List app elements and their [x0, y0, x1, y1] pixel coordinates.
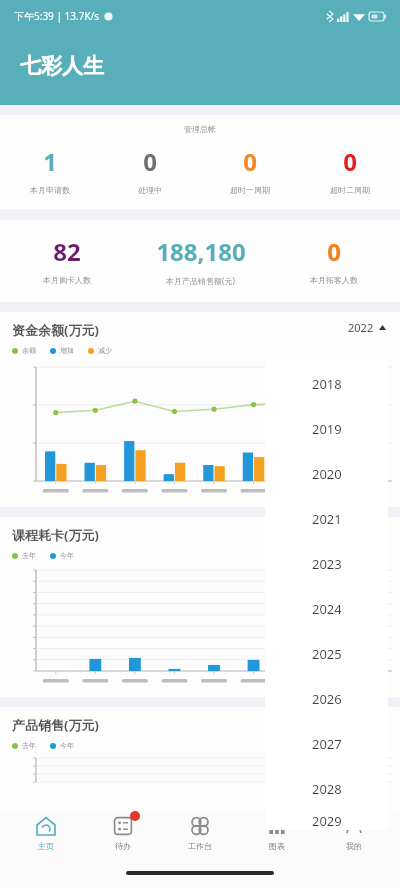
staticText: 下午5:39 | 13.7K/s	[14, 9, 100, 23]
staticText: 2018	[312, 375, 342, 393]
staticText: 2024	[312, 600, 342, 618]
staticText: 188,180	[156, 235, 246, 268]
button[interactable]: 0	[100, 145, 200, 195]
staticText: 0	[327, 235, 341, 268]
button[interactable]: 2026	[265, 676, 388, 721]
button[interactable]: 2029	[265, 811, 388, 830]
staticText: 课程耗卡(万元)	[12, 526, 99, 544]
staticText: 待办	[115, 841, 131, 851]
button[interactable]: 1	[0, 145, 100, 195]
button[interactable]: 2023	[265, 541, 388, 586]
staticText: 2025	[312, 645, 342, 663]
staticText: 去年	[22, 551, 36, 560]
button[interactable]: 2020	[265, 451, 388, 496]
staticText: 本月购卡人数	[43, 275, 91, 285]
staticText: 1	[43, 145, 57, 178]
button[interactable]: 主页	[15, 814, 77, 851]
button[interactable]: 2028	[265, 766, 388, 811]
staticText: 产品销售(万元)	[12, 716, 99, 734]
button[interactable]: 0	[200, 145, 300, 195]
staticText: 图表	[269, 841, 285, 851]
button[interactable]: 2025	[265, 631, 388, 676]
button[interactable]: 0	[267, 235, 400, 285]
staticText: 今年	[60, 551, 74, 560]
staticText: 减少	[98, 346, 112, 355]
staticText: 2019	[312, 420, 342, 438]
staticText: 处理中	[138, 185, 162, 195]
staticText: 0	[143, 145, 157, 178]
button[interactable]: 我的	[323, 814, 385, 851]
button[interactable]: 图表	[246, 814, 308, 851]
button[interactable]: 2022	[348, 320, 386, 335]
staticText: 2020	[312, 465, 342, 483]
staticText: 超时一周期	[230, 185, 270, 195]
staticText: 82	[53, 235, 81, 268]
other: Collapse year list	[379, 325, 386, 330]
staticText: 余额	[22, 346, 36, 355]
staticText: 2027	[312, 735, 342, 753]
button[interactable]: 2027	[265, 721, 388, 766]
staticText: 去年	[22, 741, 36, 750]
button[interactable]: 2019	[265, 406, 388, 451]
button[interactable]: 82	[0, 235, 134, 285]
staticText: 管理总帐	[0, 124, 400, 134]
staticText: 七彩人生	[20, 53, 104, 79]
button[interactable]: 工作台	[169, 814, 231, 851]
staticText: 超时二周期	[330, 185, 370, 195]
staticText: 本月申请数	[30, 185, 70, 195]
staticText: 2022	[348, 320, 374, 335]
staticText: 本月产品销售额(元)	[166, 275, 235, 286]
staticText: 0	[343, 145, 357, 178]
staticText: 我的	[346, 841, 362, 851]
button[interactable]: 2018	[265, 361, 388, 406]
staticText: 今年	[60, 741, 74, 750]
staticText: 2021	[312, 510, 342, 528]
staticText: 主页	[38, 841, 54, 851]
staticText: 0	[243, 145, 257, 178]
staticText: 本月拓客人数	[310, 275, 358, 285]
staticText: 2026	[312, 690, 342, 708]
staticText: 资金余额(万元)	[12, 321, 99, 339]
staticText: 2029	[312, 812, 342, 830]
button[interactable]: 待办	[92, 814, 154, 851]
staticText: 2023	[312, 555, 342, 573]
button[interactable]: 2024	[265, 586, 388, 631]
button[interactable]: 188,180	[134, 235, 267, 286]
button[interactable]: 2021	[265, 496, 388, 541]
button[interactable]: 0	[300, 145, 400, 195]
staticText: 增加	[60, 346, 74, 355]
staticText: 2028	[312, 780, 342, 798]
staticText: 工作台	[188, 841, 212, 851]
